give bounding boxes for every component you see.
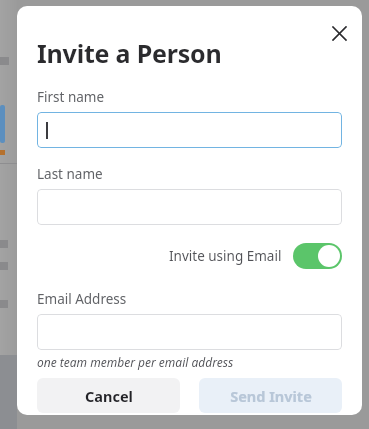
staticText: Invite using Email [169, 247, 282, 265]
staticText: Cancel [85, 386, 133, 406]
staticText: First name [37, 88, 105, 106]
button[interactable]: Invite using Email [37, 243, 342, 269]
button[interactable] [37, 314, 342, 350]
button[interactable]: Close [323, 17, 355, 49]
button[interactable]: Invite using Email toggle [293, 243, 342, 269]
staticText: Send Invite [230, 386, 312, 406]
staticText: Email Address [37, 290, 127, 308]
staticText: Invite a Person [37, 36, 222, 70]
staticText: one team member per email address [37, 354, 234, 370]
button[interactable]: Send Invite [199, 378, 342, 413]
button[interactable] [37, 189, 342, 225]
staticText: Last name [37, 165, 103, 183]
button[interactable]: Cancel [37, 378, 180, 413]
button[interactable] [37, 112, 342, 148]
